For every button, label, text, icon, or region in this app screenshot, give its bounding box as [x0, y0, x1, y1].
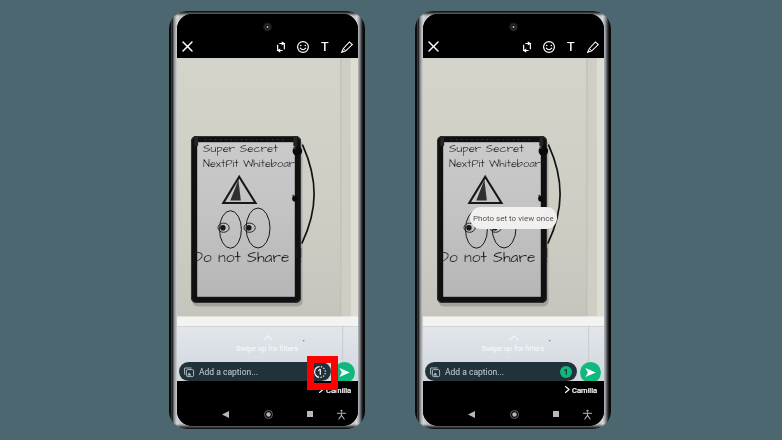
button[interactable]: Accessibility	[574, 401, 600, 426]
staticText: NextPit Whiteboard	[449, 156, 547, 171]
button[interactable]: Home	[501, 401, 527, 426]
staticText: Do not Share !!!	[193, 247, 302, 269]
button[interactable]: Add a caption...	[425, 362, 577, 381]
button[interactable]: Back	[458, 401, 484, 426]
button[interactable]: Draw	[582, 35, 604, 58]
staticText: Add a caption...	[445, 367, 504, 377]
staticText: T	[321, 39, 329, 54]
button[interactable]: Crop	[270, 35, 292, 58]
button[interactable]: View once	[314, 366, 326, 378]
button[interactable]: Recents	[297, 401, 323, 426]
button[interactable]: Crop	[516, 35, 538, 58]
staticText: Swipe up for filters	[482, 344, 545, 353]
button[interactable]: Add a caption...	[179, 362, 331, 381]
staticText: Camilla	[326, 386, 352, 395]
button[interactable]: Send	[580, 362, 601, 383]
staticText: Photo set to view once	[473, 214, 554, 223]
button[interactable]: Back	[212, 401, 238, 426]
staticText: Super Secret	[203, 141, 278, 157]
button[interactable]: View once	[560, 366, 572, 378]
button[interactable]: Sticker	[538, 35, 560, 58]
staticText: T	[567, 39, 575, 54]
button[interactable]: Sticker	[292, 35, 314, 58]
staticText: Do not Share !!!	[439, 247, 548, 269]
staticText: Camilla	[572, 386, 598, 395]
button[interactable]: Text	[560, 35, 582, 58]
staticText: NextPit Whiteboard	[203, 156, 301, 171]
button[interactable]: Recents	[543, 401, 569, 426]
button[interactable]: Close	[177, 35, 198, 58]
button[interactable]: Accessibility	[328, 401, 354, 426]
button[interactable]: Home	[255, 401, 281, 426]
button[interactable]: Draw	[336, 35, 358, 58]
staticText: Super Secret	[449, 141, 524, 157]
staticText: Swipe up for filters	[236, 344, 299, 353]
button[interactable]: Text	[314, 35, 336, 58]
button[interactable]: Send	[334, 362, 355, 383]
staticText: Add a caption...	[199, 367, 258, 377]
button[interactable]: Close	[423, 35, 444, 58]
